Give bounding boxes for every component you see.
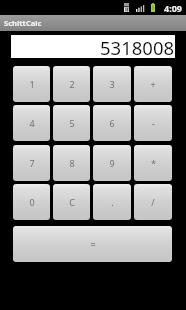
button[interactable]: 4 [13,105,50,141]
staticText: C [69,196,75,208]
staticText: 3 [109,78,115,90]
staticText: 6 [109,117,115,129]
other: Storage [124,3,129,12]
button[interactable]: 2 [53,66,90,102]
button[interactable]: 9 [93,145,131,181]
button[interactable]: 5 [53,105,90,141]
button[interactable]: = [13,226,172,262]
staticText: * [151,157,156,169]
staticText: + [150,78,156,90]
staticText: 7 [29,157,35,169]
staticText: SchittCalc [4,18,42,28]
button[interactable]: 7 [13,145,50,181]
staticText: . [111,196,114,208]
button[interactable]: 6 [93,105,131,141]
staticText: - [152,117,155,129]
staticText: 9 [109,157,115,169]
staticText: 4 [29,117,35,129]
button[interactable]: C [53,184,90,220]
staticText: = [90,238,96,250]
button[interactable]: * [134,145,172,181]
other: Signal strength [136,5,143,12]
button[interactable]: . [93,184,131,220]
button[interactable]: 0 [13,184,50,220]
staticText: / [151,196,155,208]
button[interactable]: / [134,184,172,220]
button[interactable]: 3 [93,66,131,102]
button[interactable]: 1 [13,66,50,102]
staticText: 4:09 [164,2,182,14]
staticText: 5318008 [100,35,175,58]
staticText: 0 [29,196,35,208]
staticText: 8 [69,157,75,169]
button[interactable]: + [134,66,172,102]
staticText: 2 [69,78,75,90]
other: Battery [151,3,155,12]
staticText: 5 [69,117,75,129]
button[interactable]: 8 [53,145,90,181]
button[interactable]: - [134,105,172,141]
staticText: 1 [29,78,35,90]
